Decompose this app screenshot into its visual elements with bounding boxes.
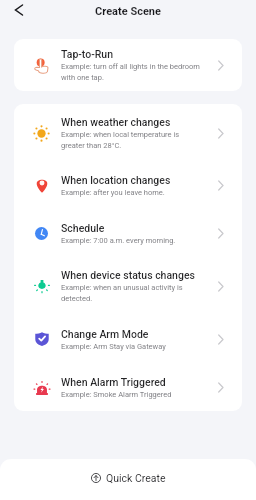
button[interactable]: Tap-to-Run [14,39,242,91]
staticText: When weather changes [61,116,171,128]
staticText: Example: when an unusual activity is det… [61,283,183,303]
button[interactable]: When location changes [14,162,242,209]
staticText: Example: Smoke Alarm Triggered [61,390,172,399]
staticText: Quick Create [106,472,166,484]
button[interactable]: Quick Create [0,459,256,500]
staticText: When location changes [61,174,171,186]
button[interactable]: Change Arm Mode [14,315,242,363]
button[interactable]: Schedule [14,209,242,257]
staticText: Change Arm Mode [61,328,149,340]
staticText: When device status changes [61,269,195,281]
staticText: Example: when local temperature is great… [61,130,180,150]
staticText: Example: Arm Stay via Gateway [61,342,166,351]
staticText: Tap-to-Run [61,48,114,60]
staticText: Example: after you leave home. [61,188,165,197]
staticText: Example: 7:00 a.m. every morning. [61,236,176,245]
staticText: Schedule [61,222,105,234]
button[interactable]: Back [7,0,31,20]
button[interactable]: When Alarm Triggered [14,363,242,411]
staticText: When Alarm Triggered [61,376,166,388]
staticText: Example: turn off all lights in the bedr… [61,62,200,82]
staticText: Create Scene [95,5,161,18]
button[interactable]: When weather changes [14,104,242,162]
button[interactable]: When device status changes [14,257,242,315]
